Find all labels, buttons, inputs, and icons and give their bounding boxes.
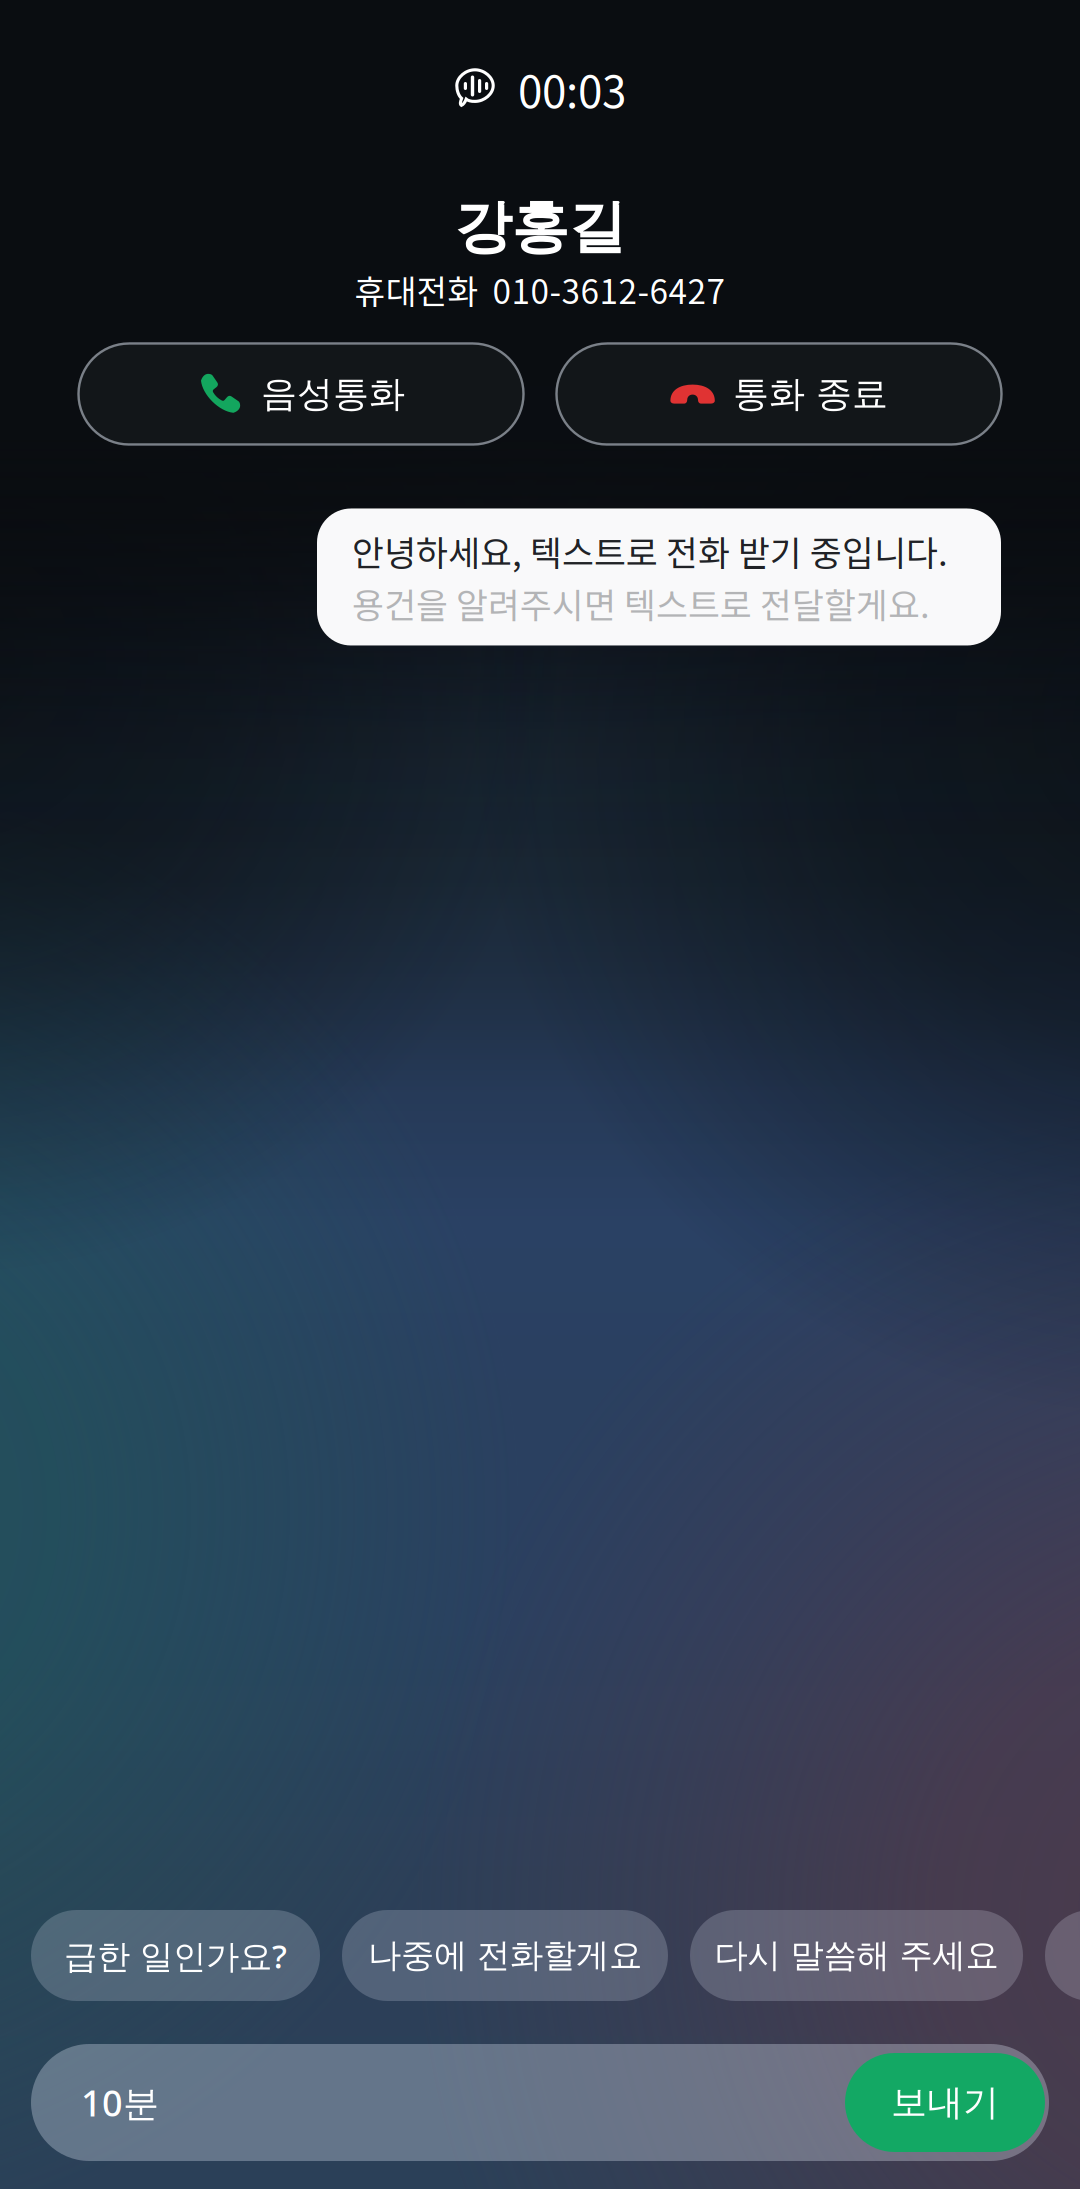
button[interactable]: 음성통화 — [78, 343, 523, 444]
staticText: 다시 말씀해 주세요 — [714, 1934, 998, 1976]
staticText: 급한 일인가요? — [64, 1933, 287, 1978]
staticText: 나중에 전화할게요 — [368, 1934, 642, 1976]
staticText: 안녕하세요, 텍스트로 전화 받기 중입니다. — [352, 526, 948, 576]
button[interactable]: 나중에 전화할게요 — [342, 1910, 668, 2001]
button[interactable]: 급한 일인가요? — [31, 1910, 320, 2001]
button[interactable]: 보내기 — [845, 2053, 1045, 2152]
staticText: 용건을 알려주시면 텍스트로 전달할게요. — [352, 578, 930, 628]
button[interactable]: 다시 말씀해 주세요 — [690, 1910, 1023, 2001]
staticText: 10분 — [81, 2078, 159, 2127]
staticText: 통화 종료 — [733, 371, 888, 417]
staticText: 보내기 — [891, 2080, 999, 2125]
button[interactable]: 통화 종료 — [556, 343, 1001, 444]
staticText: 00:03 — [518, 57, 626, 121]
staticText: 휴대전화 010-3612-6427 — [354, 265, 725, 313]
button[interactable]: 알겠어요 — [1045, 1910, 1080, 2001]
staticText: 음성통화 — [261, 371, 405, 417]
staticText: 강홍길 — [454, 191, 625, 263]
